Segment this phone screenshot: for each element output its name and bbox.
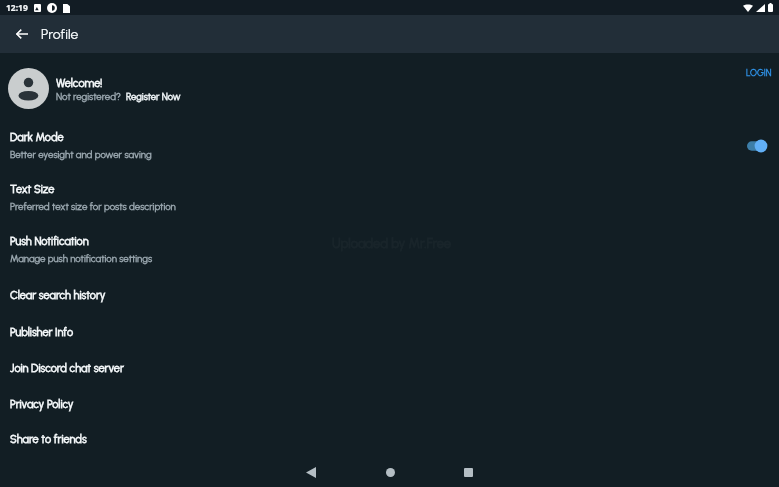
staticText: Profile <box>41 26 79 43</box>
staticText: Welcome! <box>56 77 103 90</box>
button[interactable]: Clear search history <box>0 276 779 314</box>
staticText: Publisher Info <box>10 326 74 339</box>
staticText: Text Size <box>10 183 55 196</box>
button[interactable]: Home <box>370 457 410 487</box>
button[interactable]: LOGIN <box>739 63 779 82</box>
staticText: Clear search history <box>10 289 106 302</box>
button[interactable]: Text Size <box>0 172 779 224</box>
button[interactable]: Back <box>292 457 332 487</box>
button[interactable]: Privacy Policy <box>0 386 779 422</box>
staticText: Privacy Policy <box>10 398 74 411</box>
staticText: Preferred text size for posts descriptio… <box>10 201 176 213</box>
button[interactable]: Dark Mode <box>0 120 779 172</box>
button[interactable]: Share to friends <box>0 422 779 457</box>
staticText: Share to friends <box>10 433 87 446</box>
button[interactable]: Push Notification <box>0 224 779 276</box>
staticText: Join Discord chat server <box>10 362 124 375</box>
button[interactable]: Back <box>9 21 35 47</box>
button[interactable]: Recents <box>448 457 488 487</box>
button[interactable]: Publisher Info <box>0 314 779 350</box>
button[interactable]: Welcome! <box>0 62 779 114</box>
staticText: Manage push notification settings <box>10 253 153 265</box>
staticText: Push Notification <box>10 235 89 248</box>
staticText: Dark Mode <box>10 131 64 144</box>
staticText: Better eyesight and power saving <box>10 149 152 161</box>
button[interactable]: Dark mode toggle <box>747 136 773 156</box>
staticText: 12:19 <box>6 2 28 14</box>
button[interactable]: Register Now <box>126 91 181 102</box>
staticText: Not registered? <box>56 91 121 103</box>
button[interactable]: Join Discord chat server <box>0 350 779 386</box>
staticText: LOGIN <box>746 67 772 78</box>
